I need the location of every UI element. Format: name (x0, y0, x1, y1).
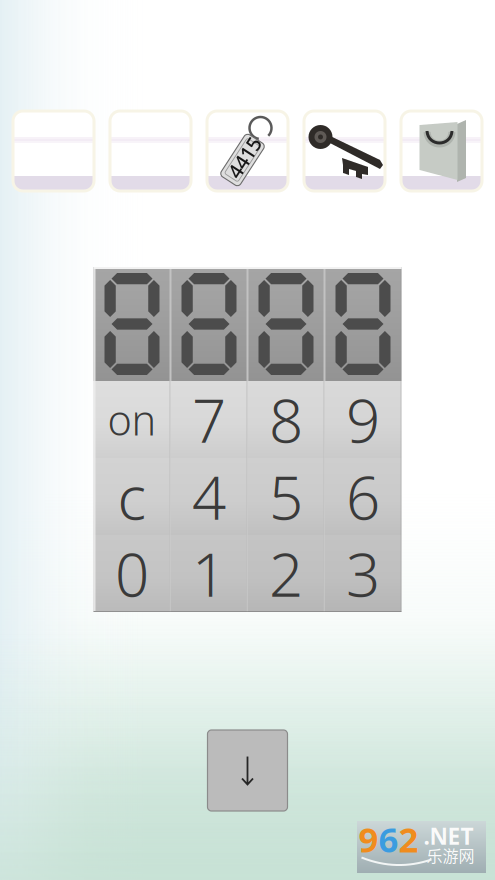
button[interactable]: Empty slot (13, 111, 94, 191)
button[interactable]: 5 (247, 458, 324, 535)
staticText: 6 (346, 457, 380, 536)
staticText: 8 (269, 380, 303, 459)
staticText: 4 (192, 457, 226, 536)
staticText: 2 (398, 816, 418, 862)
button[interactable]: 7 (170, 381, 247, 458)
staticText: 2 (269, 534, 303, 613)
button[interactable]: Key tag 4415 (207, 111, 288, 191)
button[interactable]: on (93, 381, 170, 458)
staticText: .NET (423, 821, 473, 851)
button[interactable]: 8 (247, 381, 324, 458)
button[interactable]: 3 (324, 535, 401, 612)
staticText: 9 (358, 816, 378, 862)
staticText: 7 (192, 380, 226, 459)
button[interactable]: 6 (324, 458, 401, 535)
button[interactable]: c (93, 458, 170, 535)
staticText: 4415 (220, 144, 264, 170)
staticText: c (117, 457, 146, 536)
button[interactable]: 9 (324, 381, 401, 458)
staticText: 3 (346, 534, 380, 613)
button[interactable]: 4 (170, 458, 247, 535)
button[interactable]: 2 (247, 535, 324, 612)
staticText: 乐游网 (426, 843, 474, 867)
staticText: on (107, 392, 156, 447)
button[interactable]: Empty slot (110, 111, 191, 191)
button[interactable]: Old key (304, 111, 385, 191)
button[interactable]: Go back (207, 730, 287, 811)
staticText: 6 (378, 816, 398, 862)
staticText: 9 (346, 380, 380, 459)
button[interactable]: Paper bag (401, 111, 482, 191)
staticText: 1 (192, 534, 226, 613)
staticText: 5 (269, 457, 303, 536)
staticText: 0 (115, 534, 149, 613)
button[interactable]: 1 (170, 535, 247, 612)
button[interactable]: 0 (93, 535, 170, 612)
